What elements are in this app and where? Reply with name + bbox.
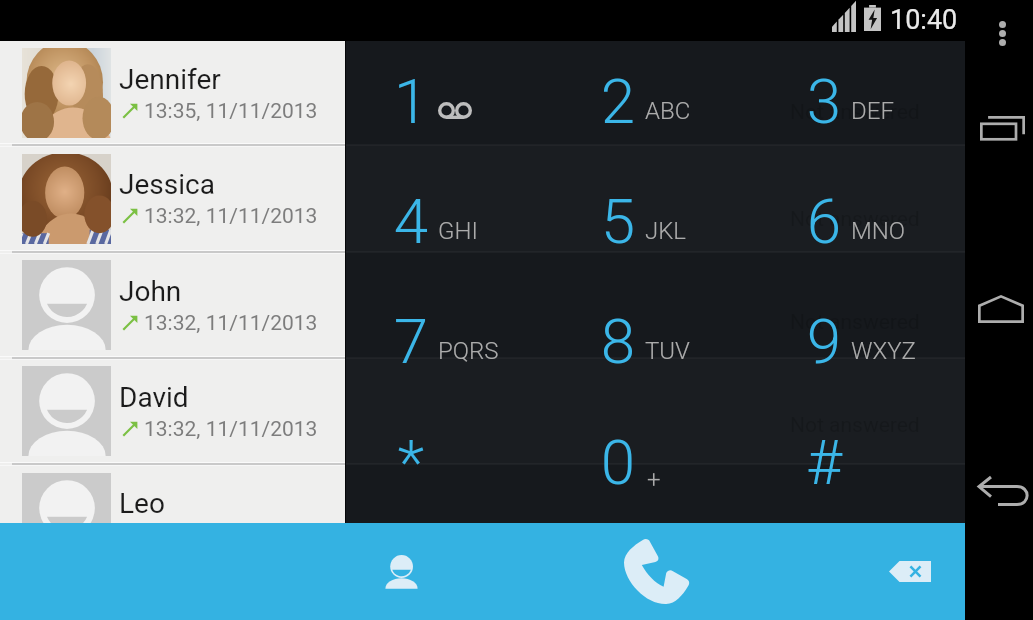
staticText: Jessica [119, 168, 215, 201]
button[interactable]: Jennifer [0, 41, 345, 145]
button[interactable]: 1 [346, 41, 553, 161]
staticText: John [119, 275, 182, 308]
button[interactable]: 0 [553, 402, 759, 523]
staticText: 6 [804, 185, 844, 258]
staticText: ABC [645, 97, 691, 125]
button[interactable]: 8 [553, 281, 759, 402]
staticText: 13:32, 11/11/2013 [144, 204, 318, 229]
staticText: Leo [119, 487, 165, 520]
button[interactable]: More options [986, 9, 1018, 57]
staticText: 2 [598, 65, 638, 138]
button[interactable]: 7 [346, 281, 553, 402]
staticText: Jennifer [119, 63, 221, 96]
staticText: 7 [391, 305, 431, 378]
staticText: + [647, 466, 661, 494]
button[interactable]: Home [965, 284, 1033, 334]
button[interactable]: 2 [553, 41, 759, 161]
staticText: # [804, 426, 844, 499]
staticText: DEF [851, 97, 894, 125]
staticText: WXYZ [851, 337, 916, 365]
staticText: 4 [391, 185, 431, 258]
staticText: GHI [438, 217, 478, 245]
button[interactable]: Back [965, 466, 1033, 516]
button[interactable]: John [0, 252, 345, 358]
staticText: 10:40 [890, 4, 958, 36]
staticText: MNO [851, 217, 906, 245]
button[interactable]: 4 [346, 161, 553, 281]
staticText: Not answered [790, 207, 920, 232]
button[interactable]: 3 [759, 41, 965, 161]
staticText: TUV [645, 337, 690, 365]
staticText: 1 [391, 65, 431, 138]
staticText: 9 [804, 305, 844, 378]
staticText: PQRS [438, 337, 499, 365]
button[interactable]: Dial pad [560, 523, 750, 620]
staticText: * [391, 426, 431, 499]
staticText: Not answered [790, 100, 920, 125]
staticText: 3 [804, 65, 844, 138]
staticText: Not answered [790, 310, 920, 335]
button[interactable]: Leo [0, 464, 345, 523]
button[interactable]: 5 [553, 161, 759, 281]
button[interactable]: 6 [759, 161, 965, 281]
staticText: David [119, 381, 189, 414]
staticText: 8 [598, 305, 638, 378]
button[interactable]: Backspace [790, 523, 965, 620]
button[interactable]: 9 [759, 281, 965, 402]
staticText: 0 [598, 426, 638, 499]
button[interactable]: Contacts [0, 523, 520, 620]
staticText: 13:32, 11/11/2013 [144, 417, 318, 442]
button[interactable]: David [0, 358, 345, 464]
button[interactable]: Recent apps [965, 104, 1033, 154]
staticText: 13:32, 11/11/2013 [144, 311, 318, 336]
button[interactable]: Jessica [0, 145, 345, 252]
staticText: JKL [645, 217, 687, 245]
staticText: 5 [598, 185, 638, 258]
button[interactable]: * [346, 402, 553, 523]
staticText: 13:35, 11/11/2013 [144, 99, 318, 124]
button[interactable]: # [759, 402, 965, 523]
